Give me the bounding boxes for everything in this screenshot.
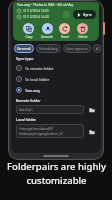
button[interactable]: Reset (58, 23, 71, 39)
staticText: /storage/emulated/0/ (19, 126, 54, 131)
button[interactable]: To local folder (16, 75, 96, 83)
staticText: Remote folder (16, 98, 41, 103)
button[interactable]: Copy (22, 23, 35, 39)
button[interactable]: Sync options (63, 44, 91, 53)
staticText: 01/12/2024 14:05 (23, 9, 49, 13)
button[interactable]: General (14, 44, 34, 53)
staticText: Account (41, 35, 53, 39)
staticText: Sync (83, 12, 92, 17)
staticText: Reset (61, 35, 69, 39)
staticText: Folderpairs are highly (7, 160, 106, 173)
button[interactable]: Account (40, 23, 54, 39)
staticText: Sync type (16, 56, 34, 61)
button[interactable]: Sync (73, 10, 96, 19)
button[interactable]: Two-way (16, 86, 96, 94)
staticText: Adva (96, 46, 98, 51)
staticText: Two-way • Photos to NAS • 3/4 ok/day (17, 3, 74, 7)
button[interactable]: Browse folder (87, 105, 96, 114)
staticText: To local folder (25, 77, 50, 82)
button[interactable]: Delete (76, 23, 89, 39)
staticText: folderpsync/googledrive_2/ (19, 131, 63, 136)
staticText: 01/12/2024 14:00 (23, 15, 49, 19)
staticText: /back/p1 (19, 107, 33, 112)
staticText: To remote folder (25, 66, 54, 71)
button[interactable]: Browse folder (87, 127, 96, 136)
staticText: Copy (25, 35, 33, 39)
button[interactable]: To remote folder (16, 64, 96, 72)
staticText: Scheduling (39, 46, 58, 51)
staticText: Local folder (16, 117, 37, 122)
button[interactable]: Scheduling (36, 44, 61, 53)
button[interactable]: /storage/emulated/0/ (16, 124, 84, 138)
button[interactable]: /back/p1 (16, 105, 84, 114)
staticText: Sync options (66, 46, 88, 51)
staticText: customizable (26, 174, 87, 187)
staticText: Two-way (25, 88, 41, 93)
button[interactable]: Adva (93, 44, 101, 53)
staticText: General (17, 46, 31, 51)
staticText: Delete (78, 35, 88, 39)
